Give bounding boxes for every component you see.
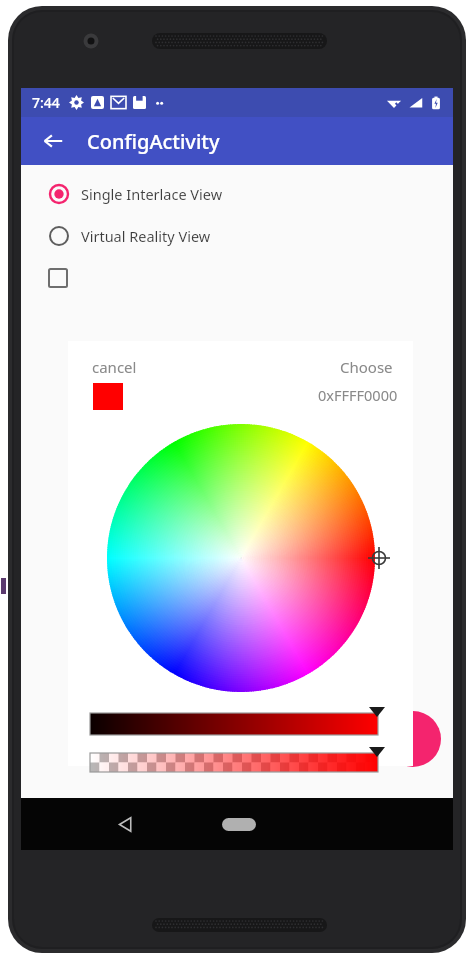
button[interactable]: Back <box>33 121 73 161</box>
staticText: 0xFFFF0000 <box>318 385 398 405</box>
staticText: 7:44 <box>32 93 60 112</box>
button[interactable]: cancel <box>88 353 141 381</box>
staticText: Choose <box>340 357 393 377</box>
button[interactable]: Add <box>385 711 441 767</box>
staticText: cancel <box>92 357 137 377</box>
button[interactable]: Alpha <box>90 753 378 772</box>
button[interactable]: Brightness <box>90 713 378 735</box>
button[interactable]: Virtual Reality View <box>49 221 453 251</box>
button[interactable]: Home <box>222 818 256 831</box>
staticText: Single Interlace View <box>81 184 223 204</box>
button[interactable] <box>49 263 453 293</box>
staticText: ConfigActivity <box>87 128 220 155</box>
staticText: Virtual Reality View <box>81 226 211 246</box>
button[interactable]: Color wheel <box>107 424 375 692</box>
button[interactable]: Single Interlace View <box>49 179 453 209</box>
button[interactable]: Choose <box>336 353 397 381</box>
button[interactable]: Back <box>103 802 147 846</box>
